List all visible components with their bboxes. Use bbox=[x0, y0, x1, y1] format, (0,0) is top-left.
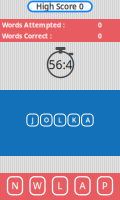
staticText: 0 bbox=[98, 21, 102, 29]
staticText: Words Attempted : bbox=[2, 21, 65, 29]
staticText: N bbox=[11, 180, 18, 192]
button[interactable]: J bbox=[27, 114, 38, 126]
staticText: J bbox=[32, 116, 34, 124]
button[interactable]: A bbox=[75, 177, 90, 195]
staticText: P bbox=[102, 180, 108, 192]
staticText: 0 bbox=[98, 32, 102, 40]
button[interactable]: W bbox=[30, 177, 45, 195]
staticText: 56:4 bbox=[48, 56, 72, 72]
staticText: W bbox=[33, 180, 42, 192]
button[interactable]: A bbox=[82, 114, 93, 126]
staticText: K bbox=[72, 116, 76, 124]
staticText: Words Correct : bbox=[2, 32, 52, 40]
staticText: O bbox=[44, 116, 49, 124]
button[interactable]: K bbox=[68, 114, 79, 126]
staticText: A bbox=[79, 180, 85, 192]
button[interactable]: P bbox=[97, 177, 112, 195]
button[interactable]: L bbox=[52, 177, 67, 195]
button[interactable]: L bbox=[54, 114, 66, 126]
staticText: High Score 0 bbox=[36, 1, 84, 12]
staticText: L bbox=[57, 180, 62, 192]
button[interactable]: O bbox=[40, 114, 52, 126]
staticText: A bbox=[85, 116, 89, 124]
button[interactable]: N bbox=[7, 177, 22, 195]
staticText: L bbox=[58, 116, 62, 124]
button[interactable]: High Score 0 bbox=[28, 1, 92, 11]
